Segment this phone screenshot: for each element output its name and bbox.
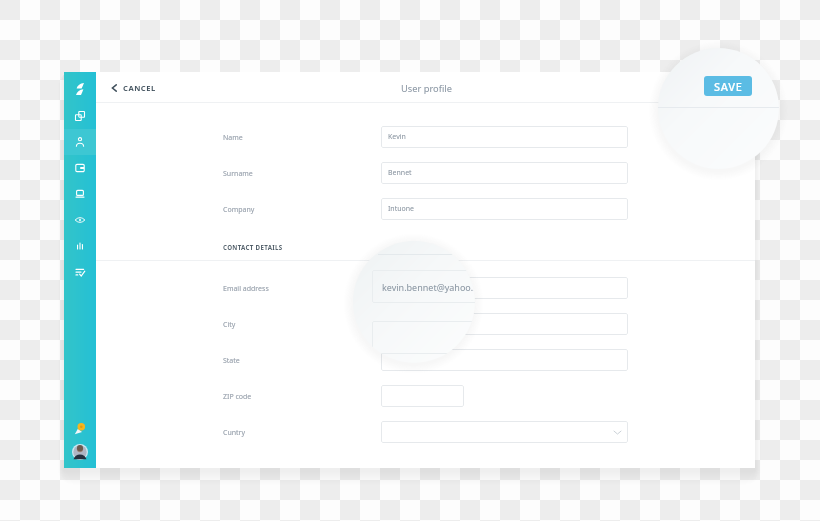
- staticText: Email address: [223, 284, 269, 294]
- staticText: Kevin: [388, 132, 406, 142]
- button[interactable]: [381, 385, 464, 407]
- staticText: User profile: [401, 82, 452, 95]
- button[interactable]: [381, 313, 628, 335]
- staticText: Name: [223, 133, 243, 143]
- button[interactable]: Kevin: [381, 126, 628, 148]
- staticText: Company: [223, 205, 255, 215]
- staticText: CANCEL: [123, 83, 156, 93]
- button[interactable]: [381, 421, 628, 443]
- button[interactable]: SAVE: [704, 76, 752, 96]
- button[interactable]: [381, 277, 628, 299]
- staticText: Surname: [223, 169, 253, 179]
- button[interactable]: Projects: [64, 103, 96, 129]
- staticText: Cuntry: [223, 428, 246, 438]
- staticText: Bennet: [388, 168, 412, 178]
- button[interactable]: Wallet: [64, 155, 96, 181]
- staticText: CONTACT DETAILS: [223, 243, 283, 251]
- staticText: SAVE: [714, 79, 743, 94]
- button[interactable]: Tasks: [64, 259, 96, 285]
- staticText: kevin.bennet@yahoo..: [382, 281, 475, 293]
- staticText: City: [223, 320, 236, 330]
- button[interactable]: Profile: [64, 441, 96, 463]
- button[interactable]: CANCEL: [110, 72, 170, 103]
- button[interactable]: Bennet: [381, 162, 628, 184]
- button[interactable]: Home: [64, 77, 96, 101]
- button[interactable]: Intuone: [381, 198, 628, 220]
- button[interactable]: Notifications: [64, 417, 96, 439]
- staticText: State: [223, 356, 240, 366]
- staticText: Intuone: [388, 204, 415, 214]
- button[interactable]: Devices: [64, 181, 96, 207]
- button[interactable]: Analytics: [64, 233, 96, 259]
- staticText: ZIP code: [223, 392, 252, 402]
- button[interactable]: [381, 349, 628, 371]
- button[interactable]: Preview: [64, 207, 96, 233]
- button[interactable]: Users: [64, 129, 96, 155]
